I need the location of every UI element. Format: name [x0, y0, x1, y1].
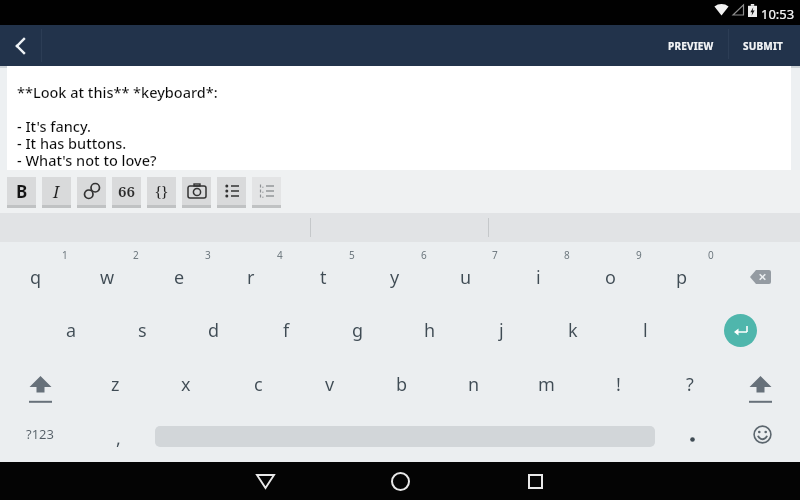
button[interactable]: d: [182, 304, 246, 356]
staticText: u: [460, 265, 472, 290]
staticText: c: [254, 372, 263, 397]
staticText: q: [30, 265, 42, 290]
button[interactable]: q: [4, 251, 68, 303]
button[interactable]: g: [326, 304, 390, 356]
staticText: 10:53: [761, 5, 795, 23]
button[interactable]: PREVIEW: [654, 25, 728, 66]
staticText: b: [396, 372, 408, 397]
button[interactable]: s: [110, 304, 174, 356]
staticText: 4: [277, 248, 283, 262]
button[interactable]: [728, 358, 792, 410]
button[interactable]: ,: [86, 412, 150, 464]
staticText: x: [181, 372, 191, 397]
button[interactable]: e: [147, 251, 211, 303]
button[interactable]: [660, 409, 724, 459]
staticText: {}: [155, 181, 168, 201]
button[interactable]: v: [298, 358, 362, 410]
staticText: !: [616, 372, 621, 397]
staticText: 7: [492, 248, 498, 262]
button[interactable]: ?123: [8, 409, 72, 459]
button[interactable]: [372, 462, 428, 500]
button[interactable]: !: [586, 358, 650, 410]
button[interactable]: r: [219, 251, 283, 303]
staticText: j: [499, 318, 504, 343]
staticText: z: [111, 372, 120, 397]
staticText: m: [538, 372, 555, 397]
staticText: i: [536, 265, 541, 290]
staticText: 3: [205, 248, 211, 262]
staticText: s: [138, 318, 147, 343]
button[interactable]: [0, 25, 41, 66]
staticText: I: [53, 180, 60, 203]
button[interactable]: i: [506, 251, 570, 303]
button[interactable]: x: [154, 358, 218, 410]
staticText: h: [424, 318, 436, 343]
button[interactable]: [728, 252, 792, 302]
button[interactable]: u: [434, 251, 498, 303]
staticText: g: [352, 318, 364, 343]
staticText: ?: [686, 372, 694, 397]
button[interactable]: l: [613, 304, 677, 356]
staticText: n: [468, 372, 480, 397]
button[interactable]: 66: [112, 177, 141, 205]
staticText: 5: [349, 248, 355, 262]
button[interactable]: [507, 462, 563, 500]
button[interactable]: w: [75, 251, 139, 303]
button[interactable]: c: [226, 358, 290, 410]
button[interactable]: ?: [658, 358, 722, 410]
button[interactable]: h: [398, 304, 462, 356]
staticText: **Look at this** *keyboard*: - It's fanc…: [17, 82, 218, 170]
button[interactable]: SUBMIT: [729, 25, 797, 66]
button[interactable]: [237, 462, 293, 500]
button[interactable]: t: [291, 251, 355, 303]
button[interactable]: [217, 177, 246, 205]
staticText: 2: [133, 248, 139, 262]
button[interactable]: [252, 177, 281, 205]
button[interactable]: [77, 177, 106, 205]
staticText: 6: [421, 248, 427, 262]
staticText: B: [16, 180, 28, 203]
button[interactable]: I: [42, 177, 71, 205]
button[interactable]: m: [514, 358, 578, 410]
staticText: 1: [62, 248, 68, 262]
staticText: p: [676, 265, 688, 290]
staticText: l: [643, 318, 648, 343]
button[interactable]: {}: [147, 177, 176, 205]
staticText: t: [320, 265, 327, 290]
button[interactable]: o: [578, 251, 642, 303]
staticText: ,: [116, 426, 121, 451]
button[interactable]: p: [650, 251, 714, 303]
staticText: v: [325, 372, 335, 397]
staticText: d: [208, 318, 220, 343]
button[interactable]: k: [541, 304, 605, 356]
staticText: e: [174, 265, 185, 290]
staticText: 8: [564, 248, 570, 262]
staticText: r: [247, 265, 255, 290]
staticText: PREVIEW: [668, 39, 714, 53]
button[interactable]: B: [7, 177, 36, 205]
staticText: 0: [708, 248, 714, 262]
button[interactable]: b: [370, 358, 434, 410]
button[interactable]: [708, 305, 772, 355]
button[interactable]: f: [254, 304, 318, 356]
button[interactable]: n: [442, 358, 506, 410]
button[interactable]: y: [363, 251, 427, 303]
staticText: k: [568, 318, 578, 343]
staticText: o: [605, 265, 616, 290]
staticText: SUBMIT: [743, 39, 784, 53]
staticText: w: [100, 265, 115, 290]
button[interactable]: [730, 409, 794, 459]
button[interactable]: [182, 177, 211, 205]
staticText: ?123: [26, 425, 54, 443]
staticText: y: [390, 265, 400, 290]
staticText: 9: [636, 248, 642, 262]
staticText: a: [66, 318, 77, 343]
button[interactable]: [8, 358, 72, 410]
button[interactable]: a: [39, 304, 103, 356]
staticText: f: [283, 318, 290, 343]
button[interactable]: j: [469, 304, 533, 356]
staticText: 66: [118, 181, 135, 201]
button[interactable]: z: [83, 358, 147, 410]
